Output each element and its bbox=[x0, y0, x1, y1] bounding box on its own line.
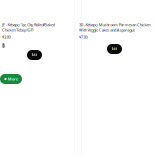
staticText: $7.00 bbox=[79, 34, 88, 39]
button[interactable]: Add bbox=[27, 50, 42, 60]
staticText: Add bbox=[111, 47, 117, 51]
button[interactable]: Add bbox=[107, 44, 122, 54]
staticText: JF - Kebapçı 1pc Oty Rolled/Baked Chicke… bbox=[2, 22, 55, 33]
staticText: 30 - Kebapçı Mushroom Parmesan Chicken W… bbox=[79, 22, 150, 33]
staticText: More bbox=[8, 76, 18, 82]
staticText: Add bbox=[31, 53, 37, 57]
staticText: $3.00 bbox=[2, 34, 11, 39]
button[interactable]: More bbox=[0, 74, 22, 84]
